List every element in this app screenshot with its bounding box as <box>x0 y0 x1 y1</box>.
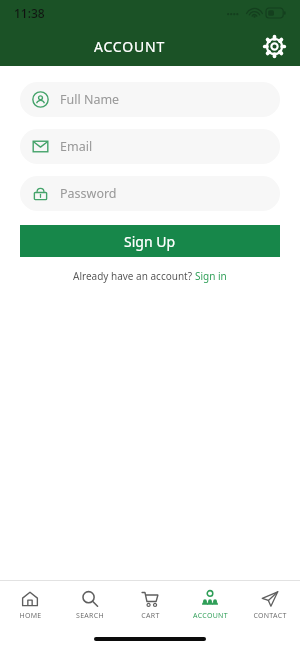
staticText: SEARCH <box>76 611 104 621</box>
button[interactable]: Full Name <box>20 82 280 117</box>
staticText: 11:38 <box>14 5 45 21</box>
staticText: Full Name <box>60 91 120 108</box>
button[interactable]: SEARCH <box>60 590 120 621</box>
staticText: Password <box>60 185 117 202</box>
button[interactable]: HOME <box>0 590 60 621</box>
button[interactable]: Sign in <box>195 269 227 283</box>
button[interactable]: Sign Up <box>20 225 280 257</box>
button[interactable]: Email <box>20 129 280 164</box>
staticText: Sign Up <box>124 232 176 251</box>
staticText: CART <box>141 611 160 621</box>
button[interactable]: Password <box>20 176 280 211</box>
button[interactable]: CART <box>120 590 180 621</box>
staticText: CONTACT <box>253 611 287 621</box>
button[interactable]: Settings <box>258 30 290 62</box>
staticText: Email <box>60 138 93 155</box>
staticText: Sign in <box>195 269 227 283</box>
staticText: HOME <box>19 611 42 621</box>
button[interactable]: CONTACT <box>240 590 300 621</box>
staticText: Already have an account? <box>73 269 195 283</box>
staticText: ACCOUNT <box>94 37 165 56</box>
staticText: ACCOUNT <box>193 611 228 621</box>
button[interactable]: ACCOUNT <box>180 590 240 621</box>
